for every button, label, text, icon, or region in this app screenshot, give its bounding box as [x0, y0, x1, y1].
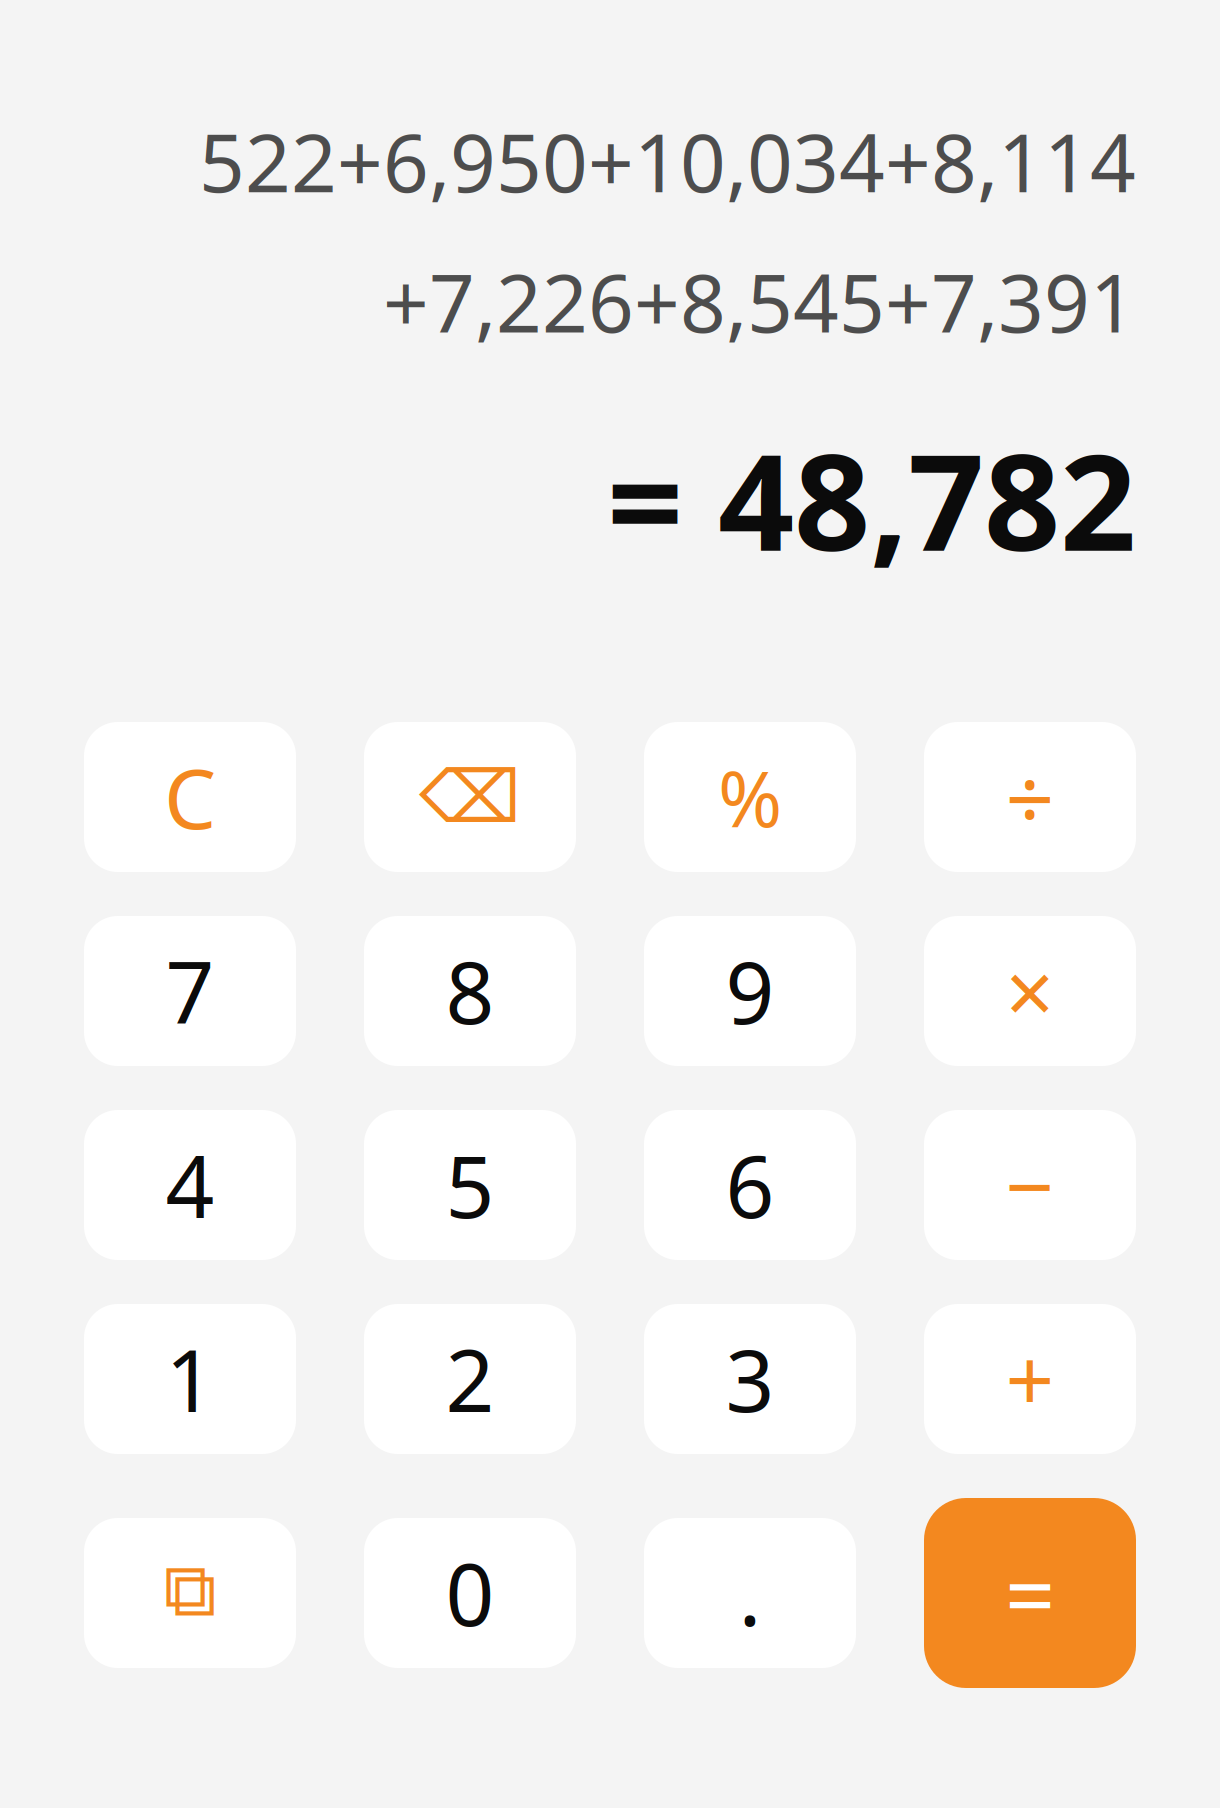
button[interactable]: 6 — [644, 1110, 856, 1260]
staticText: 8 — [445, 934, 494, 1048]
button[interactable]: 3 — [644, 1304, 856, 1454]
staticText: ÷ — [1005, 740, 1054, 854]
staticText: 0 — [445, 1536, 494, 1650]
staticText: = — [1005, 1535, 1055, 1651]
staticText: ⧉ — [163, 1557, 216, 1629]
button[interactable]: Delete — [364, 722, 576, 872]
staticText: − — [1005, 1128, 1054, 1242]
button[interactable]: Add — [924, 1304, 1136, 1454]
staticText: % — [718, 746, 782, 848]
button[interactable]: 5 — [364, 1110, 576, 1260]
staticText: +7,226+8,545+7,391 — [383, 248, 1136, 354]
button[interactable]: Subtract — [924, 1110, 1136, 1260]
button[interactable]: 8 — [364, 916, 576, 1066]
staticText: C — [164, 742, 216, 852]
staticText: 2 — [445, 1322, 494, 1436]
staticText: ⌫ — [419, 756, 521, 838]
button[interactable]: Multiply — [924, 916, 1136, 1066]
staticText: 3 — [725, 1322, 774, 1436]
button[interactable]: 0 — [364, 1518, 576, 1668]
staticText: . — [738, 1536, 761, 1650]
staticText: 4 — [165, 1128, 214, 1242]
button[interactable]: 2 — [364, 1304, 576, 1454]
staticText: 522+6,950+10,034+8,114 — [199, 108, 1136, 214]
button[interactable]: Equals — [924, 1498, 1136, 1688]
staticText: 9 — [725, 934, 774, 1048]
staticText: 1 — [165, 1322, 214, 1436]
button[interactable]: Clear — [84, 722, 296, 872]
staticText: 7 — [165, 934, 214, 1048]
button[interactable]: 7 — [84, 916, 296, 1066]
button[interactable]: Unit converter — [84, 1518, 296, 1668]
button[interactable]: Decimal point — [644, 1518, 856, 1668]
staticText: 5 — [445, 1128, 494, 1242]
button[interactable]: 9 — [644, 916, 856, 1066]
button[interactable]: Percent — [644, 722, 856, 872]
button[interactable]: 1 — [84, 1304, 296, 1454]
button[interactable]: 4 — [84, 1110, 296, 1260]
staticText: = 48,782 — [607, 410, 1136, 588]
staticText: × — [1005, 934, 1054, 1048]
staticText: + — [1005, 1322, 1054, 1436]
staticText: 6 — [725, 1128, 774, 1242]
button[interactable]: Divide — [924, 722, 1136, 872]
